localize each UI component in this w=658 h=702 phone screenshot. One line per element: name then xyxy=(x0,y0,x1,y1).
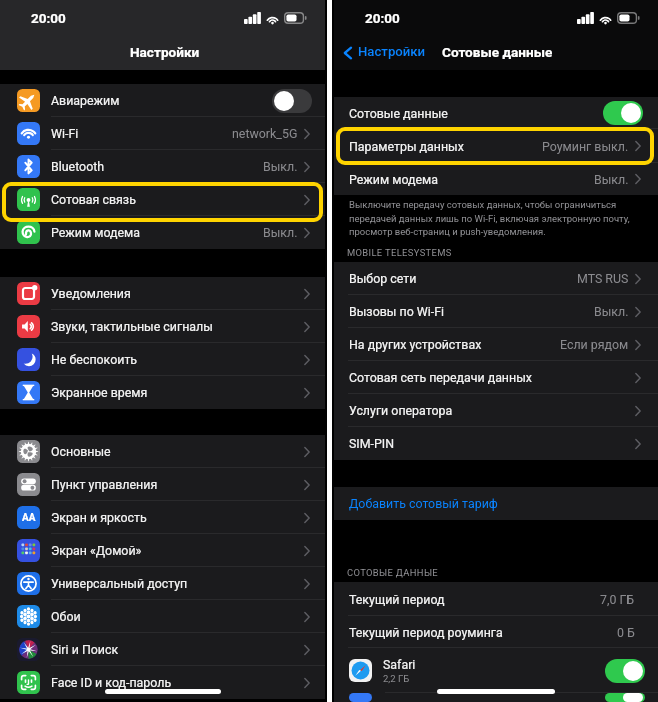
button[interactable]: Wi-Fi xyxy=(0,117,325,150)
button[interactable]: Сотовые данные xyxy=(334,97,658,129)
button[interactable]: Safari xyxy=(334,648,658,693)
staticText: Выкл. xyxy=(263,225,298,240)
staticText: Экранное время xyxy=(51,385,148,400)
staticText: Сотовые данные xyxy=(442,44,553,60)
staticText: Звуки, тактильные сигналы xyxy=(51,319,213,334)
button[interactable]: Режим модема xyxy=(0,216,325,249)
button[interactable]: Уведомления xyxy=(0,277,325,310)
staticText: Режим модема xyxy=(349,172,439,187)
button[interactable]: SIM-PIN xyxy=(334,427,658,460)
staticText: Основные xyxy=(51,444,111,459)
staticText: 7,0 ГБ xyxy=(600,592,635,607)
button[interactable]: Режим модема xyxy=(334,163,658,195)
button[interactable]: Пункт управления xyxy=(0,468,325,501)
button[interactable]: Siri и Поиск xyxy=(0,633,325,666)
button[interactable]: Услуги оператора xyxy=(334,394,658,427)
staticText: AA xyxy=(22,512,36,524)
staticText: Вызовы по Wi-Fi xyxy=(349,304,445,319)
staticText: Универсальный доступ xyxy=(51,576,188,591)
button[interactable]: Универсальный доступ xyxy=(0,567,325,600)
staticText: Параметры данных xyxy=(349,139,464,154)
staticText: Экран и яркость xyxy=(51,510,147,525)
button[interactable]: Параметры данных xyxy=(334,129,658,163)
staticText: Если рядом xyxy=(560,337,629,352)
staticText: Сотовая сеть передачи данных xyxy=(349,370,532,385)
staticText: 20:00 xyxy=(365,10,400,26)
staticText: Face ID и код-пароль xyxy=(51,675,172,690)
staticText: Сотовая связь xyxy=(51,192,136,207)
staticText: Выбор сети xyxy=(349,271,417,286)
staticText: Настройки xyxy=(130,44,200,60)
button[interactable]: Вызовы по Wi-Fi xyxy=(334,295,658,328)
button[interactable]: Звуки, тактильные сигналы xyxy=(0,310,325,343)
staticText: Обои xyxy=(51,609,81,624)
staticText: Режим модема xyxy=(51,225,141,240)
staticText: Добавить сотовый тариф xyxy=(349,496,498,511)
button[interactable]: Сотовая связь xyxy=(0,183,325,216)
staticText: Выкл. xyxy=(594,172,629,187)
button[interactable]: Обои xyxy=(0,600,325,633)
staticText: Сотовые данные xyxy=(349,106,448,121)
staticText: 0 Б xyxy=(617,625,635,640)
staticText: СОТОВЫЕ ДАННЫЕ xyxy=(347,567,439,578)
staticText: Siri и Поиск xyxy=(51,642,119,657)
button[interactable]: Face ID и код-пароль xyxy=(0,666,325,699)
staticText: Текущий период xyxy=(349,592,445,607)
button[interactable]: Экранное время xyxy=(0,376,325,409)
button[interactable]: Добавить сотовый тариф xyxy=(334,487,658,520)
staticText: Safari xyxy=(383,657,416,672)
staticText: Wi-Fi xyxy=(51,126,79,141)
staticText: Авиарежим xyxy=(51,93,120,108)
staticText: Bluetooth xyxy=(51,159,105,174)
staticText: Экран «Домой» xyxy=(51,543,142,558)
staticText: Не беспокоить xyxy=(51,352,138,367)
staticText: Пункт управления xyxy=(51,477,158,492)
button[interactable]: Текущий период xyxy=(334,582,658,616)
staticText: Выключите передачу сотовых данных, чтобы… xyxy=(349,199,644,237)
staticText: SIM-PIN xyxy=(349,436,394,451)
button[interactable]: Не беспокоить xyxy=(0,343,325,376)
staticText: Выкл. xyxy=(263,159,298,174)
button[interactable]: Выбор сети xyxy=(334,262,658,295)
button[interactable]: Текущий период роуминга xyxy=(334,616,658,648)
button[interactable]: AA xyxy=(0,501,325,534)
staticText: 20:00 xyxy=(31,10,66,26)
staticText: Роуминг выкл. xyxy=(542,139,629,154)
staticText: MOBILE TELESYSTEMS xyxy=(347,247,452,258)
staticText: network_5G xyxy=(232,126,298,141)
staticText: Выкл. xyxy=(594,304,629,319)
staticText: На других устройствах xyxy=(349,337,482,352)
button[interactable]: Авиарежим xyxy=(0,84,325,117)
button[interactable] xyxy=(334,693,658,702)
staticText: 2,2 ГБ xyxy=(383,673,410,684)
staticText: Настройки xyxy=(358,44,426,59)
button[interactable]: Экран «Домой» xyxy=(0,534,325,567)
button[interactable]: Назад в Настройки xyxy=(344,45,426,60)
button[interactable]: Основные xyxy=(0,435,325,468)
staticText: Текущий период роуминга xyxy=(349,625,503,640)
button[interactable]: На других устройствах xyxy=(334,328,658,361)
staticText: Уведомления xyxy=(51,286,131,301)
staticText: Услуги оператора xyxy=(349,403,453,418)
staticText: MTS RUS xyxy=(577,271,629,286)
button[interactable]: Bluetooth xyxy=(0,150,325,183)
button[interactable]: Сотовая сеть передачи данных xyxy=(334,361,658,394)
